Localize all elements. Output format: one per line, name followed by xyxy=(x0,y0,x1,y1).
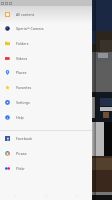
staticText: Places xyxy=(16,70,27,75)
button[interactable]: Picasa xyxy=(0,146,92,161)
button[interactable]: Favorites xyxy=(0,80,92,95)
staticText: Picasa xyxy=(16,151,27,156)
button[interactable]: Videos xyxy=(0,51,92,66)
button[interactable]: Places xyxy=(0,65,92,80)
staticText: Flickr xyxy=(16,166,25,171)
button[interactable]: All content xyxy=(0,7,92,22)
button[interactable]: Xperia™ Camera xyxy=(0,21,92,36)
staticText: Folders xyxy=(16,41,29,46)
staticText: Help xyxy=(16,115,24,120)
button[interactable]: Flickr xyxy=(0,161,92,176)
staticText: All content xyxy=(16,12,35,17)
staticText: Settings xyxy=(16,100,30,105)
button[interactable]: Settings xyxy=(0,95,92,110)
staticText: Facebook xyxy=(16,136,33,141)
button[interactable]: Help xyxy=(0,110,92,125)
button[interactable]: Facebook xyxy=(0,131,92,146)
staticText: Favorites xyxy=(16,85,32,90)
button[interactable]: Folders xyxy=(0,36,92,51)
staticText: Videos xyxy=(16,56,28,61)
staticText: Xperia™ Camera xyxy=(16,26,44,31)
